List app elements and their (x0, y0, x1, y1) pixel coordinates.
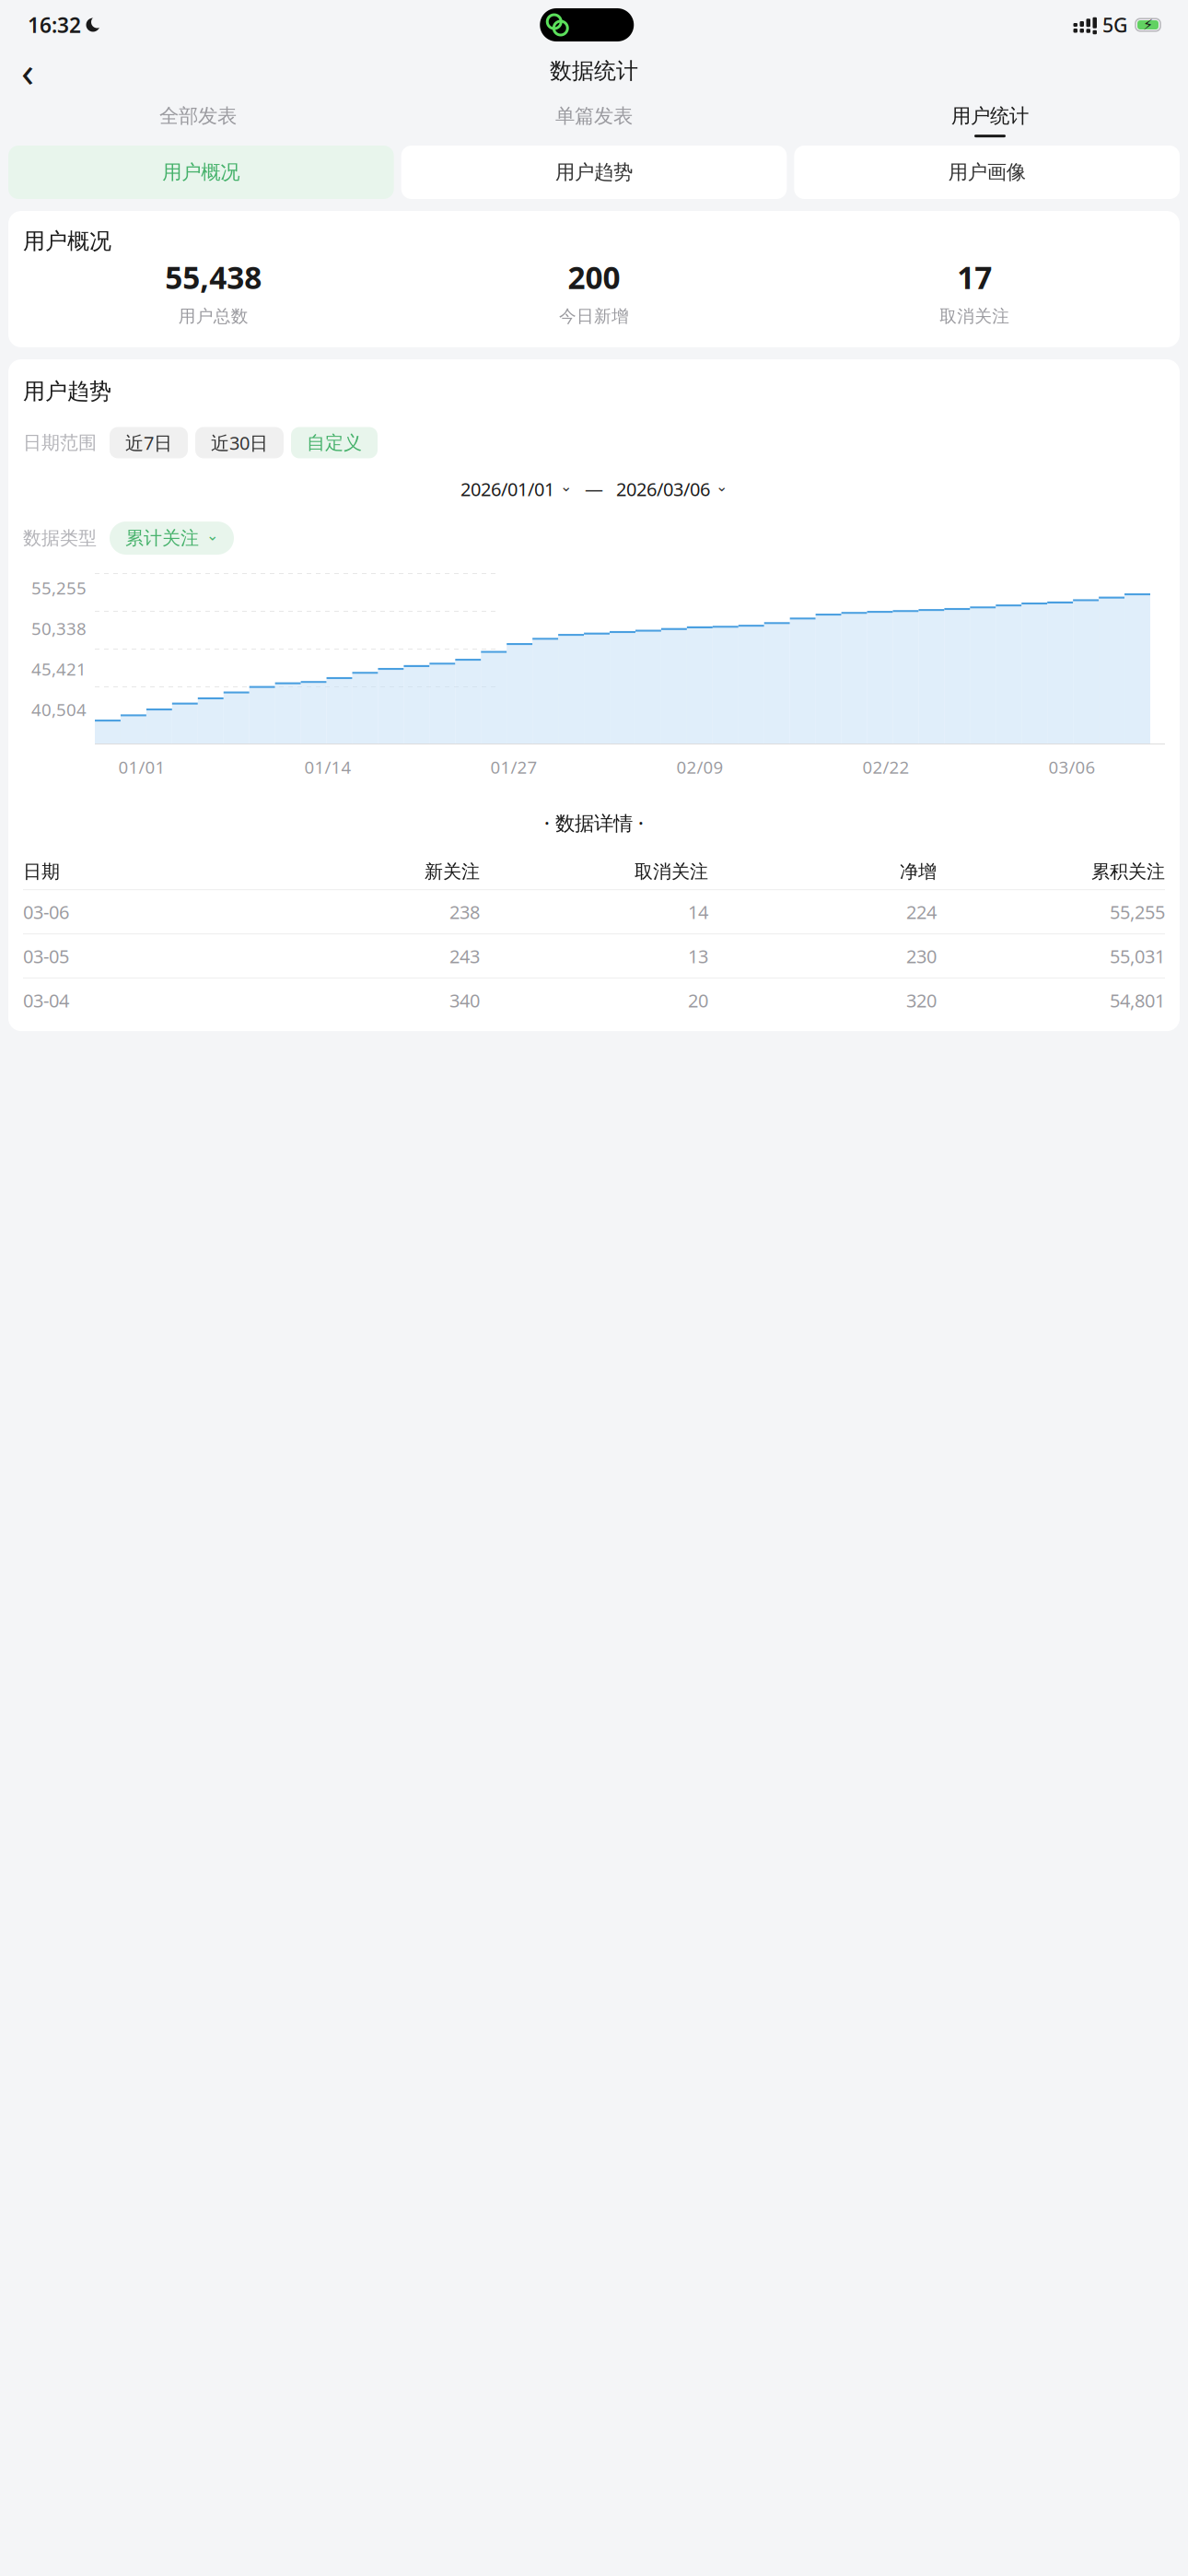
button[interactable]: 自定义 (291, 427, 378, 458)
staticText: 55,255 (31, 576, 87, 599)
button[interactable]: 用户趋势 (401, 146, 787, 199)
staticText: 14 (688, 900, 708, 924)
staticText: 单篇发表 (555, 104, 633, 128)
staticText: 02/09 (676, 755, 723, 778)
staticText: 数据类型 (23, 527, 97, 549)
staticText: 03-06 (23, 900, 69, 924)
staticText: 累积关注 (1091, 860, 1165, 883)
staticText: 自定义 (307, 431, 362, 454)
staticText: 55,438 (165, 257, 262, 297)
staticText: 净增 (900, 860, 937, 883)
staticText: ‹ (21, 43, 34, 99)
staticText: 用户趋势 (23, 378, 111, 405)
button[interactable]: 近7日 (110, 427, 188, 458)
staticText: 近30日 (211, 430, 268, 455)
staticText: 取消关注 (635, 860, 708, 883)
staticText: ⌄ (206, 527, 218, 544)
staticText: 55,255 (1110, 900, 1165, 924)
button[interactable]: 近30日 (195, 427, 284, 458)
staticText: 03-05 (23, 944, 69, 968)
staticText: 今日新增 (559, 306, 629, 327)
staticText: 02/22 (862, 755, 909, 778)
staticText: 03/06 (1048, 755, 1095, 778)
staticText: 01/14 (304, 755, 351, 778)
staticText: 45,421 (31, 657, 87, 680)
staticText: 用户趋势 (555, 160, 633, 184)
staticText: 01/01 (118, 755, 165, 778)
staticText: 243 (449, 944, 480, 968)
staticText: ⌄ (560, 478, 572, 495)
staticText: ⌄ (716, 478, 728, 495)
button[interactable]: 2026/01/01 (460, 477, 572, 501)
staticText: 用户总数 (178, 306, 248, 327)
button[interactable]: 用户画像 (794, 146, 1180, 199)
button[interactable]: 用户概况 (8, 146, 394, 199)
staticText: 55,031 (1110, 944, 1165, 968)
button[interactable]: Back (7, 51, 48, 91)
staticText: 用户画像 (948, 160, 1026, 184)
staticText: 5G (1102, 12, 1128, 38)
staticText: 54,801 (1110, 988, 1165, 1013)
button[interactable]: 2026/03/06 (616, 477, 728, 501)
staticText: 2026/03/06 (616, 477, 710, 501)
staticText: 新关注 (425, 860, 480, 883)
staticText: 用户统计 (951, 104, 1029, 128)
staticText: 320 (906, 988, 937, 1013)
staticText: 20 (688, 988, 708, 1013)
staticText: 2026/01/01 (460, 477, 554, 501)
staticText: 用户概况 (23, 228, 111, 255)
staticText: · 数据详情 · (544, 810, 644, 836)
staticText: 用户概况 (162, 160, 240, 184)
staticText: 日期范围 (23, 431, 97, 454)
staticText: 40,504 (31, 698, 87, 721)
staticText: 数据统计 (550, 57, 638, 85)
staticText: — (585, 477, 603, 501)
staticText: 16:32 (28, 11, 81, 39)
staticText: 近7日 (125, 430, 172, 455)
staticText: 224 (906, 900, 937, 924)
staticText: 取消关注 (940, 306, 1010, 327)
staticText: ⚡︎ (1143, 16, 1153, 33)
button[interactable]: 单篇发表 (396, 97, 792, 137)
staticText: 日期 (23, 860, 60, 883)
button[interactable]: 累计关注 (110, 521, 234, 555)
staticText: 340 (449, 988, 480, 1013)
staticText: 03-04 (23, 988, 69, 1013)
staticText: 17 (957, 257, 992, 297)
staticText: 200 (568, 257, 620, 297)
staticText: 01/27 (490, 755, 537, 778)
staticText: 230 (906, 944, 937, 968)
button[interactable]: 用户统计 (792, 97, 1188, 137)
staticText: 13 (688, 944, 708, 968)
staticText: 238 (449, 900, 480, 924)
staticText: 累计关注 (125, 527, 199, 549)
button[interactable]: 全部发表 (0, 97, 396, 137)
staticText: 50,338 (31, 617, 87, 640)
staticText: 全部发表 (159, 104, 237, 128)
